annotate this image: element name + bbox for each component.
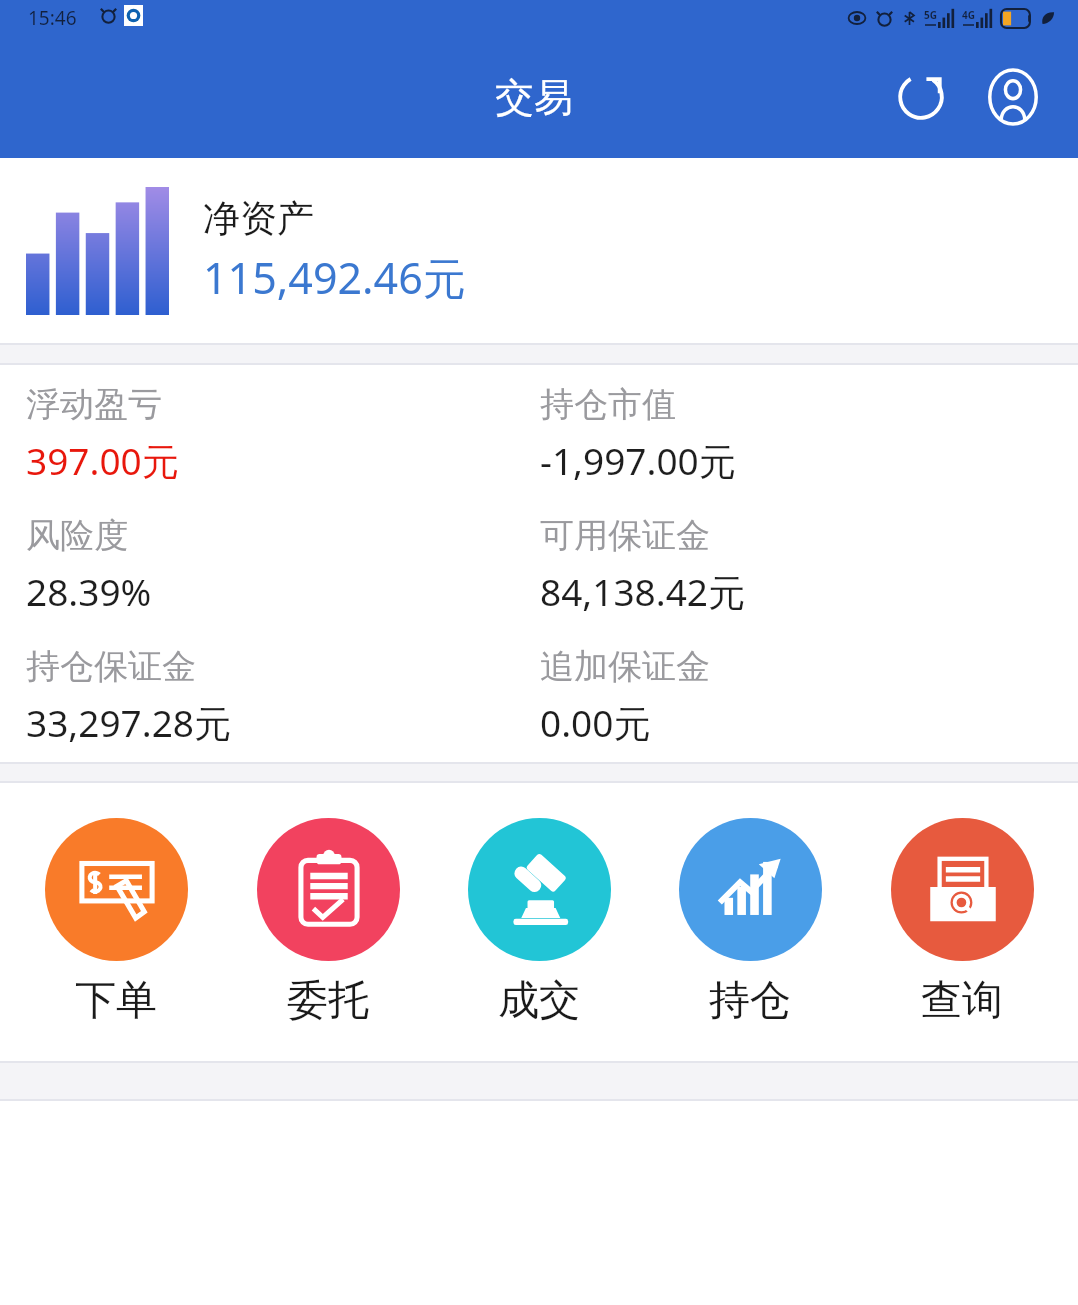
staticText: 397.00元 xyxy=(26,435,179,486)
staticText: 5G xyxy=(924,8,937,22)
staticText: 持仓 xyxy=(709,975,791,1027)
button[interactable]: 成交 xyxy=(444,810,634,1035)
button[interactable]: Refresh xyxy=(884,60,958,134)
staticText: 委托 xyxy=(287,975,369,1027)
staticText: 28.39% xyxy=(26,566,152,616)
staticText: -1,997.00元 xyxy=(540,435,736,486)
staticText: 可用保证金 xyxy=(540,514,710,557)
staticText: 追加保证金 xyxy=(540,645,710,688)
staticText: 成交 xyxy=(498,975,580,1027)
staticText: 0.00元 xyxy=(540,697,651,748)
staticText: 15:46 xyxy=(28,5,77,31)
staticText: 115,492.46元 xyxy=(203,248,466,307)
staticText: 33,297.28元 xyxy=(26,697,231,748)
button[interactable]: 委托 xyxy=(233,810,423,1035)
button[interactable]: 下单 xyxy=(21,810,211,1035)
staticText: 净资产 xyxy=(203,195,314,242)
staticText: 交易 xyxy=(495,73,573,122)
button[interactable]: Account xyxy=(976,60,1050,134)
staticText: 风险度 xyxy=(26,514,128,557)
staticText: 持仓保证金 xyxy=(26,645,196,688)
button[interactable]: 查询 xyxy=(867,810,1057,1035)
staticText: 84,138.42元 xyxy=(540,566,745,617)
button[interactable]: 净资产 xyxy=(0,158,1078,343)
button[interactable]: 持仓 xyxy=(655,810,845,1035)
staticText: 查询 xyxy=(921,975,1003,1027)
staticText: 4G xyxy=(962,8,975,22)
staticText: 下单 xyxy=(75,975,157,1027)
staticText: 持仓市值 xyxy=(540,383,676,426)
staticText: 浮动盈亏 xyxy=(26,383,162,426)
